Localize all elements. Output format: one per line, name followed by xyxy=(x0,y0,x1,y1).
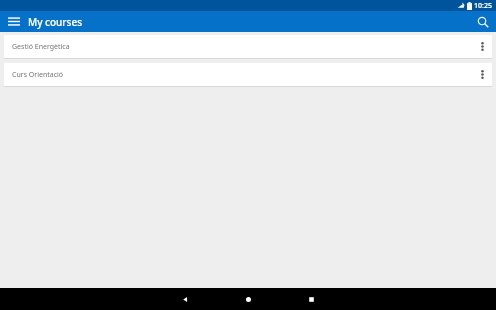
button[interactable]: Back xyxy=(163,288,207,310)
button[interactable]: Curs Orientació xyxy=(4,63,492,86)
button[interactable]: Recent apps xyxy=(289,288,333,310)
button[interactable]: Home xyxy=(226,288,270,310)
staticText: My courses xyxy=(28,15,83,29)
button[interactable]: Search xyxy=(470,11,496,32)
staticText: 10:25 xyxy=(474,1,492,11)
staticText: Curs Orientació xyxy=(12,70,64,80)
button[interactable]: More options xyxy=(472,63,492,86)
button[interactable]: More options xyxy=(472,35,492,58)
staticText: Gestió Energètica xyxy=(12,42,70,52)
button[interactable]: Gestió Energètica xyxy=(4,35,492,58)
button[interactable]: Open navigation menu xyxy=(0,11,28,32)
